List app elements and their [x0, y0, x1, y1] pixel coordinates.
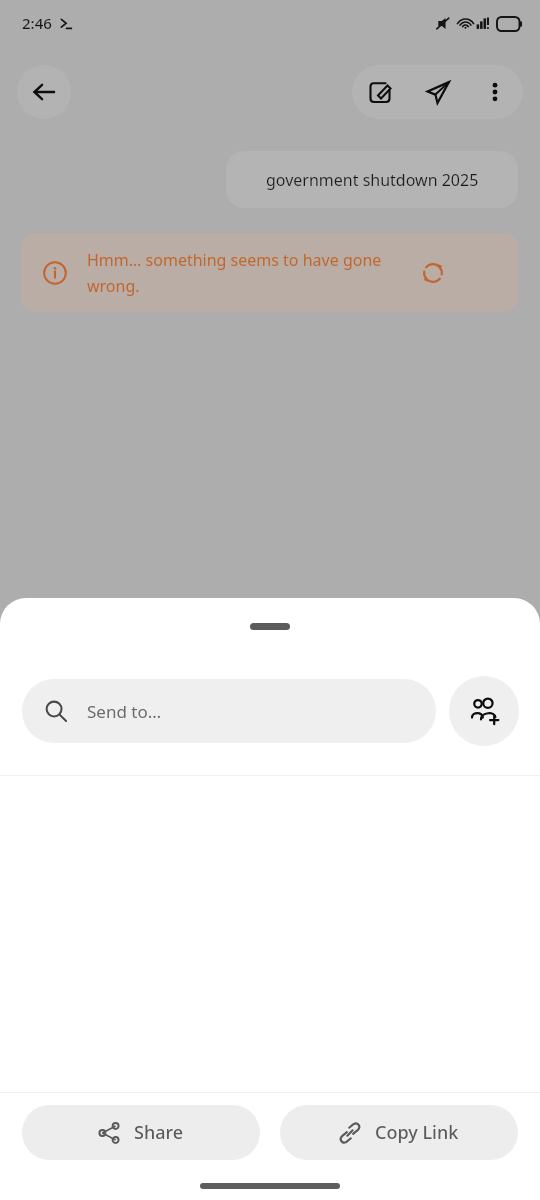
button[interactable]: Hmm… something seems to have gone wrong. — [21, 233, 518, 312]
button[interactable]: More options — [466, 65, 523, 119]
staticText: Copy Link — [375, 1120, 459, 1145]
button[interactable]: Share — [22, 1105, 260, 1160]
staticText: Send to… — [87, 700, 162, 723]
staticText: 2:46 — [22, 13, 52, 33]
staticText: government shutdown 2025 — [266, 169, 479, 191]
staticText: Share — [134, 1120, 184, 1145]
button[interactable]: Back — [17, 65, 71, 119]
button[interactable]: Edit — [352, 65, 409, 119]
button[interactable]: Add people — [449, 676, 519, 746]
button[interactable]: Send to… — [22, 679, 436, 743]
button[interactable]: Copy Link — [280, 1105, 518, 1160]
button[interactable]: Send — [409, 65, 466, 119]
button[interactable]: government shutdown 2025 — [226, 151, 518, 208]
button[interactable]: Retry — [413, 253, 453, 293]
staticText: Hmm… something seems to have gone wrong. — [87, 249, 407, 297]
